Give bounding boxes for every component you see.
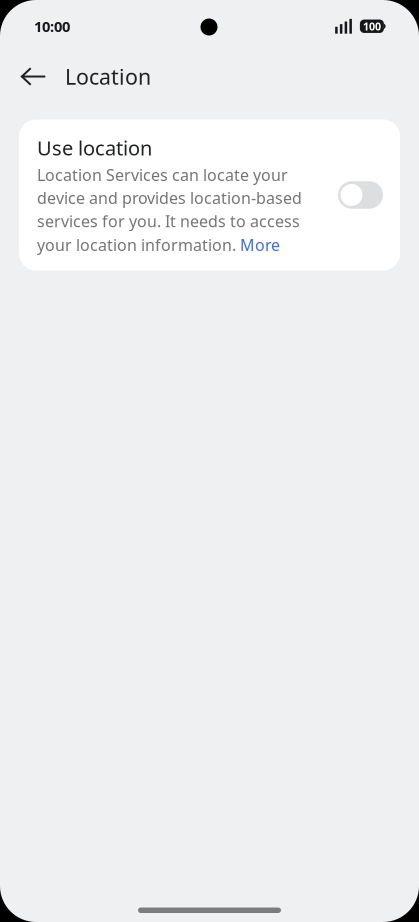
staticText: Use location (37, 134, 152, 161)
button[interactable]: Back (11, 54, 55, 98)
staticText: your location information. (37, 234, 240, 255)
button[interactable]: More (240, 234, 280, 255)
staticText: More (240, 234, 280, 255)
staticText: Location Services can locate your device… (37, 164, 302, 232)
button[interactable]: Use location (338, 181, 383, 208)
staticText: Location (65, 62, 151, 91)
staticText: 100 (363, 19, 381, 33)
staticText: 10:00 (34, 16, 70, 36)
